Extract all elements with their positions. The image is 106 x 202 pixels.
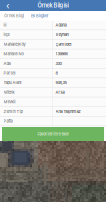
staticText: ‹ (6, 0, 10, 11)
staticText: Örnek Bilgi (4, 13, 24, 18)
staticText: Parsel (3, 71, 15, 75)
button[interactable]: Favorilerime ekle (2, 127, 104, 141)
staticText: Tapu Alanı (3, 80, 21, 85)
staticText: Mevkii (3, 99, 15, 104)
staticText: Adana (55, 23, 66, 27)
staticText: Ada (3, 61, 10, 66)
staticText: Favorilerime ekle (37, 132, 68, 136)
staticText: İlçe (3, 32, 9, 37)
staticText: İli (3, 23, 6, 27)
staticText: 330 (55, 61, 62, 66)
button[interactable]: Ek Bilgiler (28, 11, 53, 20)
staticText: Ana Taşınmaz (55, 109, 80, 114)
staticText: 8 (55, 71, 57, 75)
staticText: Arsa (55, 90, 64, 95)
staticText: Çamlıbel (55, 42, 71, 47)
staticText: Mahalle No (3, 51, 23, 56)
button[interactable]: Back (0, 0, 16, 11)
staticText: 938,35 (55, 80, 66, 85)
staticText: 139866 (55, 51, 67, 56)
staticText: Örnek Bilgisi (37, 2, 68, 9)
staticText: Mahalle/Köy (3, 42, 25, 47)
staticText: Nitelik (3, 90, 14, 95)
staticText: Ek Bilgiler (31, 13, 49, 18)
staticText: Zemin Tip (3, 109, 22, 114)
button[interactable]: Örnek Bilgi (0, 11, 28, 20)
staticText: Pafta (3, 119, 12, 123)
staticText: Seyhan (55, 32, 68, 37)
